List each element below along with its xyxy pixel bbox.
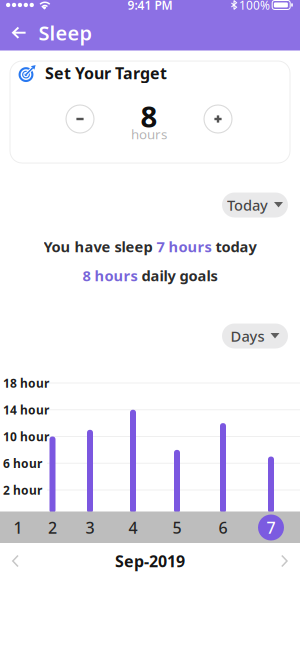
button[interactable]: Decrease hours xyxy=(66,105,94,133)
button[interactable]: Increase hours xyxy=(204,105,232,133)
staticText: Sep-2019 xyxy=(115,550,185,572)
button[interactable]: 3 xyxy=(79,516,101,538)
button[interactable]: Previous month xyxy=(4,547,27,574)
staticText: 2 xyxy=(48,517,57,538)
staticText: 18 hour xyxy=(3,375,49,391)
staticText: 10 hour xyxy=(3,428,49,444)
staticText: 8 xyxy=(140,96,157,135)
button[interactable]: 5 xyxy=(166,516,188,538)
staticText: today xyxy=(211,237,256,256)
button[interactable]: 4 xyxy=(122,516,144,538)
staticText: Days xyxy=(230,326,264,346)
staticText: 1 xyxy=(13,517,22,538)
button[interactable]: 7 xyxy=(258,514,284,540)
staticText: 6 hour xyxy=(3,455,42,471)
staticText: 8 hours xyxy=(82,266,137,285)
staticText: 2 hour xyxy=(3,482,42,498)
button[interactable]: 6 xyxy=(212,516,234,538)
staticText: 7 xyxy=(266,517,275,538)
staticText: hours xyxy=(131,125,167,143)
staticText: 9:41 PM xyxy=(127,0,172,13)
staticText: 100% xyxy=(239,0,270,13)
staticText: daily goals xyxy=(137,266,217,285)
button[interactable]: 1 xyxy=(7,516,29,538)
staticText: 6 xyxy=(218,517,227,538)
button[interactable]: Days xyxy=(222,323,288,348)
button[interactable]: Back xyxy=(0,21,26,44)
staticText: Sleep xyxy=(38,19,92,46)
staticText: 7 hours xyxy=(156,237,211,256)
staticText: 3 xyxy=(85,517,94,538)
staticText: You have sleep xyxy=(43,237,156,256)
staticText: Today xyxy=(227,195,268,215)
button[interactable]: Next month xyxy=(273,547,296,574)
button[interactable]: Today xyxy=(222,192,288,217)
staticText: Set Your Target xyxy=(45,62,167,84)
staticText: 4 xyxy=(128,517,137,538)
staticText: 14 hour xyxy=(3,402,49,418)
button[interactable]: 2 xyxy=(41,516,63,538)
staticText: 5 xyxy=(172,517,181,538)
